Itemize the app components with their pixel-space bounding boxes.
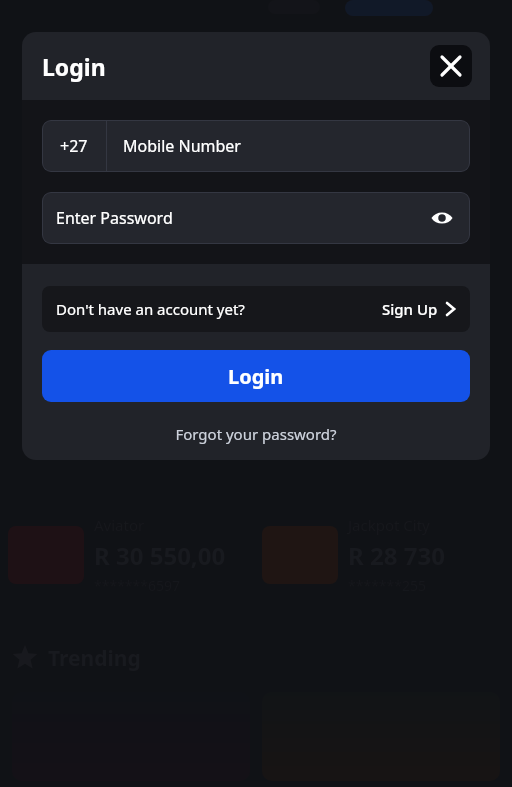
staticText: Forgot your password? (175, 424, 337, 444)
staticText: Don't have an account yet? (56, 299, 382, 319)
button[interactable]: +27 (42, 120, 470, 172)
button[interactable]: Don't have an account yet? (42, 286, 470, 332)
staticText: +27 (60, 135, 88, 157)
button[interactable]: Enter Password (42, 192, 470, 244)
staticText: Login (42, 51, 106, 82)
button[interactable]: Show password (428, 204, 456, 232)
staticText: Trending (48, 644, 141, 673)
button[interactable]: Forgot your password? (42, 420, 470, 448)
staticText: R 28 730 (348, 539, 445, 572)
button[interactable]: Close (430, 45, 472, 87)
staticText: Enter Password (56, 207, 428, 229)
staticText: Sign Up (382, 299, 438, 319)
button[interactable]: Login (42, 350, 470, 402)
staticText: Mobile Number (123, 135, 241, 157)
staticText: R 30 550,00 (94, 539, 226, 572)
staticText: Login (228, 363, 284, 390)
